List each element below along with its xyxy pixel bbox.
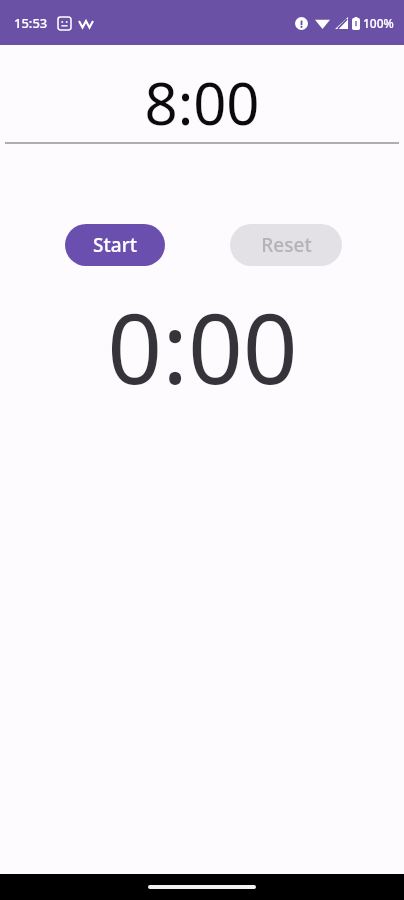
button[interactable]: Start <box>65 224 165 266</box>
staticText: 8:00 <box>144 63 260 142</box>
staticText: 0:00 <box>107 281 298 412</box>
staticText: Reset <box>261 232 312 258</box>
staticText: Start <box>93 232 137 258</box>
staticText: 100% <box>363 15 394 31</box>
button[interactable]: Reset <box>230 224 342 266</box>
button[interactable]: Timer duration input <box>0 45 404 144</box>
staticText: 15:53 <box>14 14 48 32</box>
